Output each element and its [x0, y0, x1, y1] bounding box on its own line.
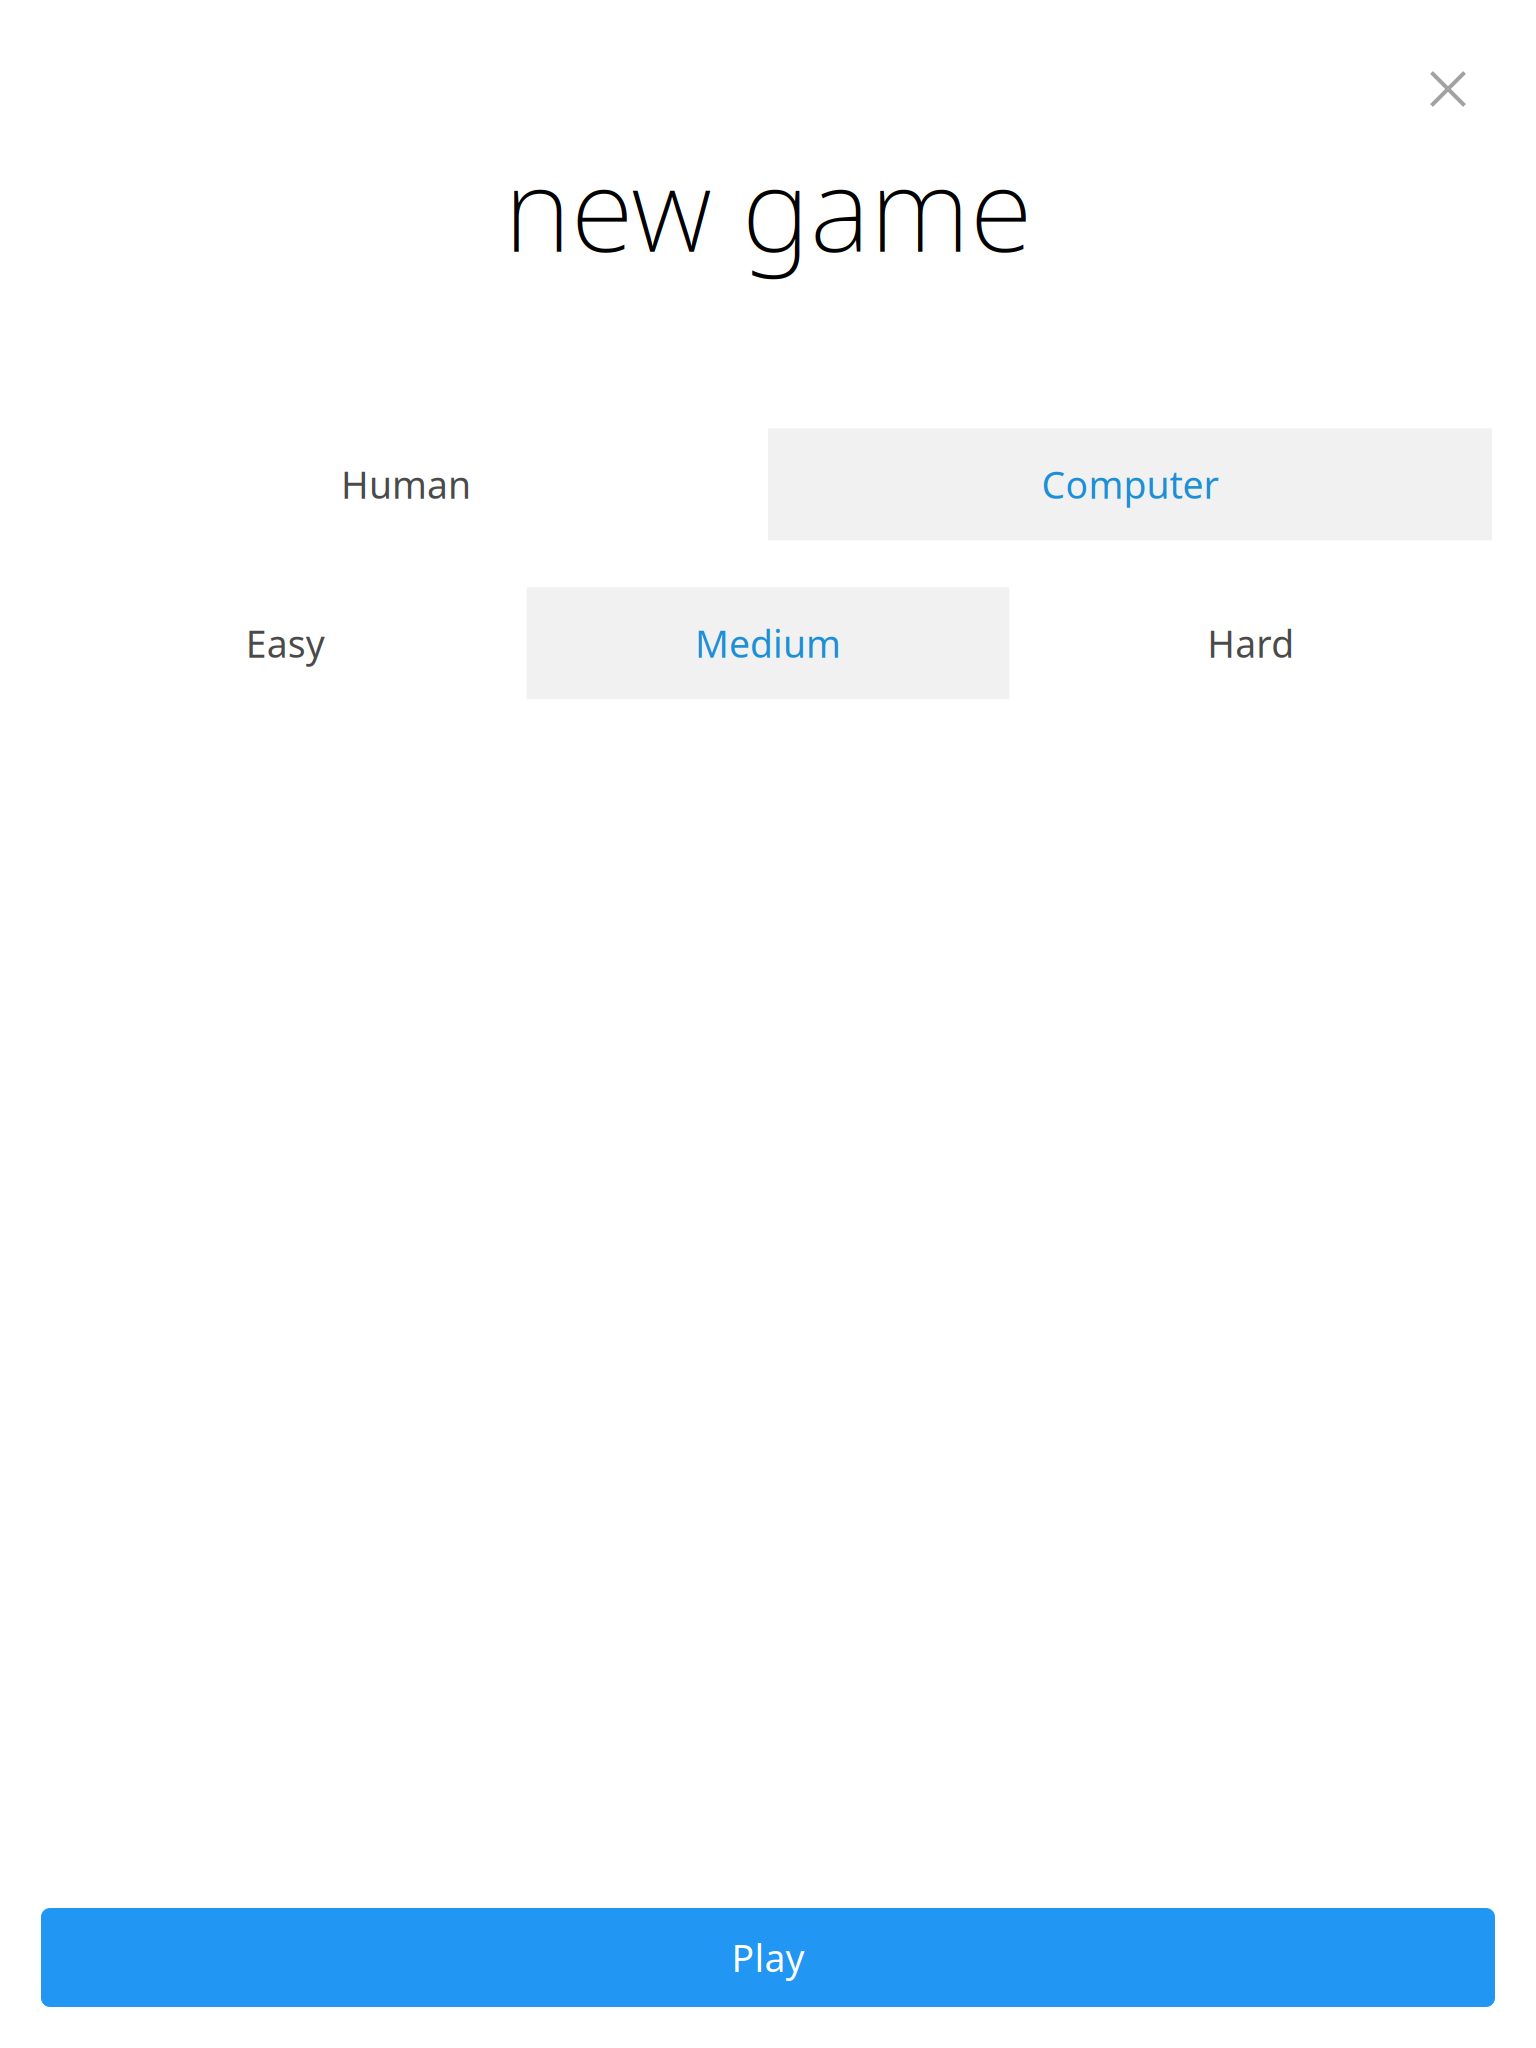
button[interactable]: Play: [41, 1908, 1495, 2007]
staticText: Play: [731, 1933, 804, 1982]
button[interactable]: Computer: [768, 428, 1492, 540]
staticText: Medium: [695, 618, 841, 668]
button[interactable]: Easy: [44, 587, 527, 699]
button[interactable]: Human: [44, 428, 768, 540]
button[interactable]: Hard: [1009, 587, 1492, 699]
button[interactable]: Medium: [527, 587, 1009, 699]
staticText: Computer: [1041, 459, 1218, 509]
staticText: Hard: [1207, 618, 1294, 668]
staticText: Human: [341, 459, 471, 509]
staticText: new game: [504, 131, 1032, 283]
staticText: Easy: [246, 618, 325, 668]
button[interactable]: Close: [1412, 53, 1484, 125]
